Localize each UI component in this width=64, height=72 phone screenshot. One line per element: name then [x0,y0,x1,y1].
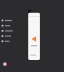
button[interactable]: Menu item [2,25,24,27]
button[interactable]: Menu item [2,20,24,21]
button[interactable]: Close menu [28,10,31,13]
button[interactable]: Profile [3,62,7,66]
button[interactable]: Menu item [2,35,24,37]
button[interactable]: Menu item [2,40,24,42]
button[interactable]: Menu item [2,30,24,32]
